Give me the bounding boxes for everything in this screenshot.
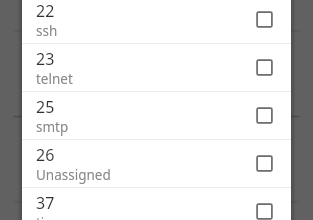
staticText: 22 <box>36 0 55 22</box>
staticText: time <box>36 214 65 220</box>
staticText: telnet <box>36 70 73 88</box>
button[interactable]: 26 <box>22 140 291 188</box>
staticText: Unassigned <box>36 166 111 184</box>
button[interactable]: Select port 26 <box>256 155 273 172</box>
button[interactable]: Select port 25 <box>256 107 273 124</box>
button[interactable]: 25 <box>22 92 291 140</box>
staticText: ssh <box>36 22 58 40</box>
staticText: 37 <box>36 192 55 214</box>
staticText: 25 <box>36 96 55 118</box>
staticText: 23 <box>36 48 55 70</box>
staticText: 26 <box>36 144 55 166</box>
button[interactable]: Select port 23 <box>256 59 273 76</box>
button[interactable]: Select port 22 <box>256 11 273 28</box>
button[interactable]: 37 <box>22 188 291 220</box>
button[interactable]: Select port 37 <box>256 203 273 220</box>
staticText: smtp <box>36 118 69 136</box>
button[interactable]: 23 <box>22 44 291 92</box>
button[interactable]: 22 <box>22 0 291 44</box>
